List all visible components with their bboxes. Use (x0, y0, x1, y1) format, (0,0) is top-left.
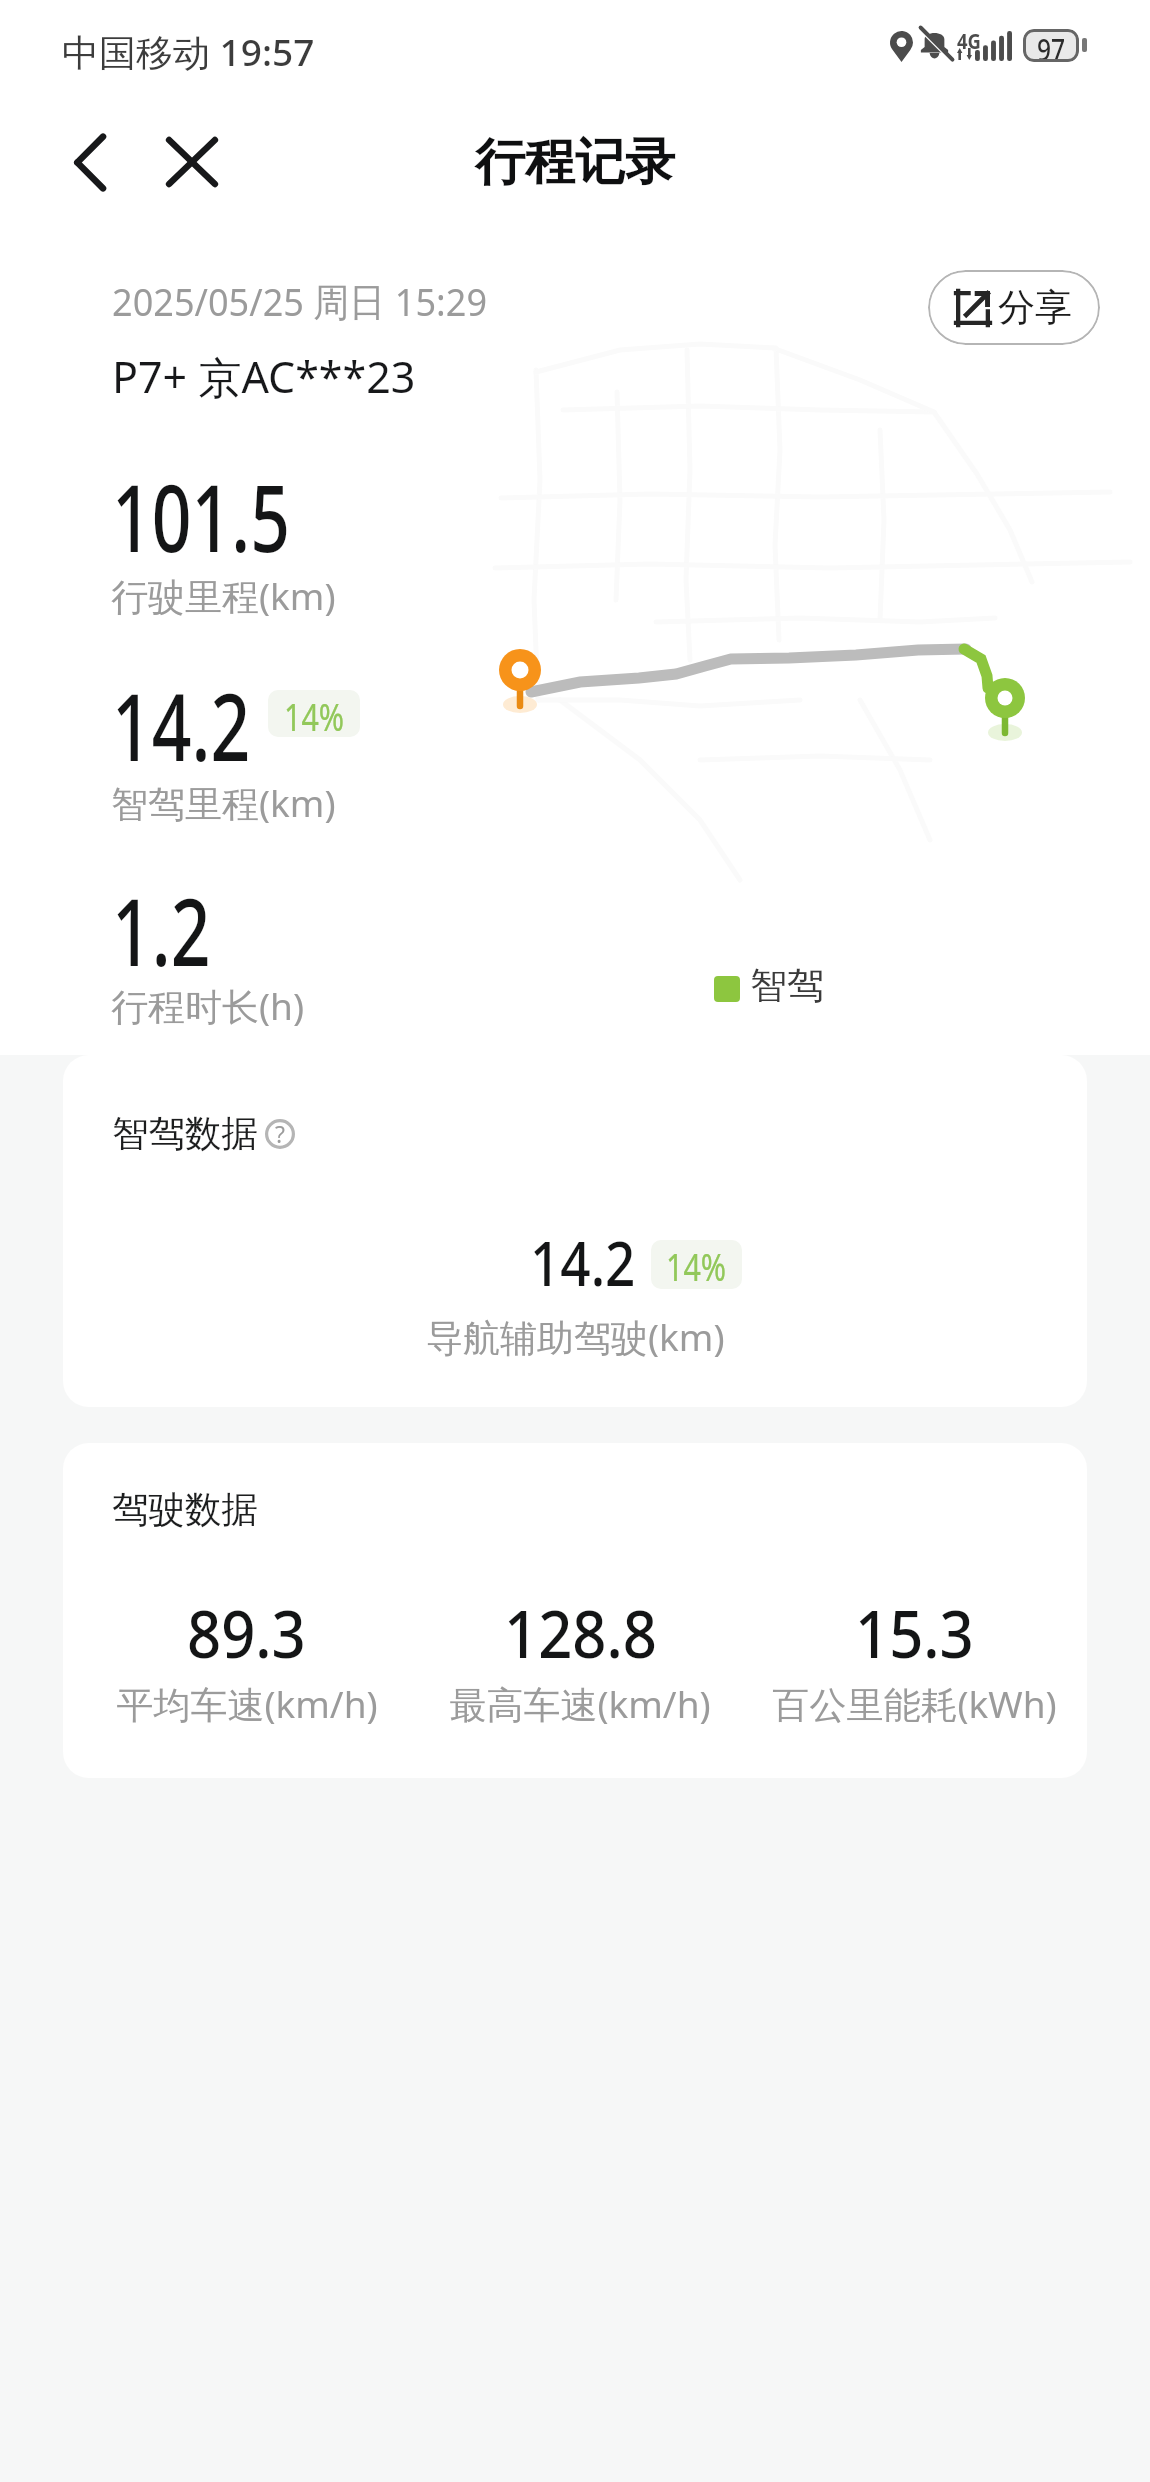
staticText: 2025/05/25 周日 15:29 (112, 274, 488, 327)
staticText: ? (275, 1118, 285, 1148)
staticText: 14.2 (530, 1220, 636, 1304)
staticText: 1.2 (112, 868, 211, 993)
button[interactable]: 智驾数据 (63, 1055, 1087, 1407)
staticText: 智驾 (750, 962, 824, 1009)
staticText: 14% (666, 1240, 727, 1289)
staticText: 智驾里程(km) (111, 777, 336, 828)
staticText: 行程记录 (475, 131, 675, 194)
staticText: 97 (1037, 29, 1066, 62)
staticText: 101.5 (112, 454, 290, 579)
staticText: 89.3 (187, 1587, 306, 1677)
button[interactable]: Help (265, 1119, 295, 1149)
staticText: 分享 (998, 284, 1072, 331)
staticText: 128.8 (504, 1587, 657, 1677)
button[interactable]: 分享 (928, 270, 1100, 345)
staticText: 14% (284, 690, 345, 737)
staticText: 行程时长(h) (111, 980, 305, 1031)
button[interactable]: 驾驶数据 (63, 1443, 1087, 1778)
staticText: P7+ 京AC***23 (112, 347, 416, 406)
staticText: 14.2 (112, 663, 250, 788)
staticText: 智驾数据 (112, 1111, 258, 1157)
button[interactable]: Back (48, 122, 132, 202)
staticText: 行驶里程(km) (111, 570, 336, 621)
staticText: 平均车速(km/h) (116, 1678, 378, 1729)
staticText: 百公里能耗(kWh) (772, 1678, 1057, 1729)
staticText: 中国移动 19:57 (62, 26, 315, 77)
staticText: 4G (957, 27, 982, 56)
staticText: 15.3 (855, 1587, 974, 1677)
button[interactable]: Close (150, 122, 234, 202)
staticText: 驾驶数据 (112, 1487, 258, 1533)
staticText: 导航辅助驾驶(km) (426, 1311, 725, 1362)
staticText: 最高车速(km/h) (449, 1678, 711, 1729)
